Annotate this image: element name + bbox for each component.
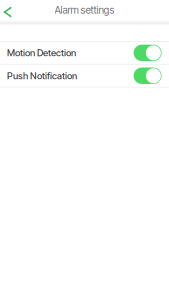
button[interactable]: Push Notification	[0, 65, 169, 87]
button[interactable]: Back	[0, 0, 26, 20]
staticText: Motion Detection	[7, 47, 76, 58]
button[interactable]: Motion Detection	[0, 42, 169, 64]
staticText: Push Notification	[7, 70, 77, 81]
staticText: Alarm settings	[54, 4, 114, 16]
